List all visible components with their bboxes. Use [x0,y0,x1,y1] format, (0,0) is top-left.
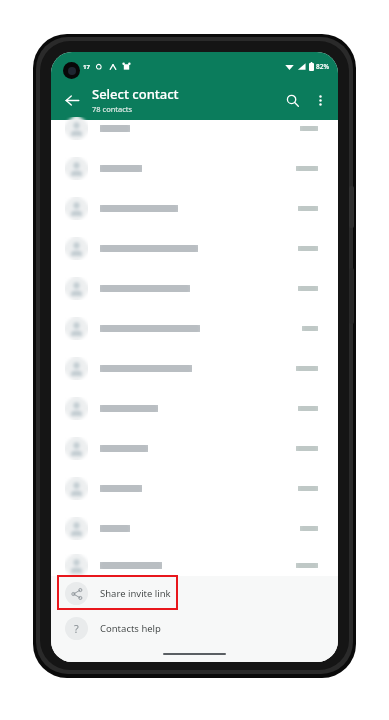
staticText: Share invite link [100,587,171,600]
staticText: Contacts help [100,622,161,635]
button[interactable] [51,428,338,468]
button[interactable] [51,188,338,228]
button[interactable] [51,348,338,388]
staticText: 82% [316,62,329,71]
button[interactable]: More options [306,86,334,114]
button[interactable] [51,388,338,428]
button[interactable]: Back [57,85,87,115]
button[interactable] [51,468,338,508]
button[interactable]: ? [51,611,338,646]
button[interactable] [51,228,338,268]
button[interactable]: Share invite link [51,576,338,611]
button[interactable]: Search [278,86,306,114]
button[interactable] [51,268,338,308]
button[interactable] [51,508,338,548]
button[interactable] [51,548,338,582]
staticText: Select contact [92,85,179,103]
button[interactable] [51,308,338,348]
staticText: 17 [83,63,90,71]
staticText: ? [74,621,79,636]
button[interactable] [51,108,338,148]
button[interactable] [51,148,338,188]
staticText: 78 contacts [92,104,133,114]
